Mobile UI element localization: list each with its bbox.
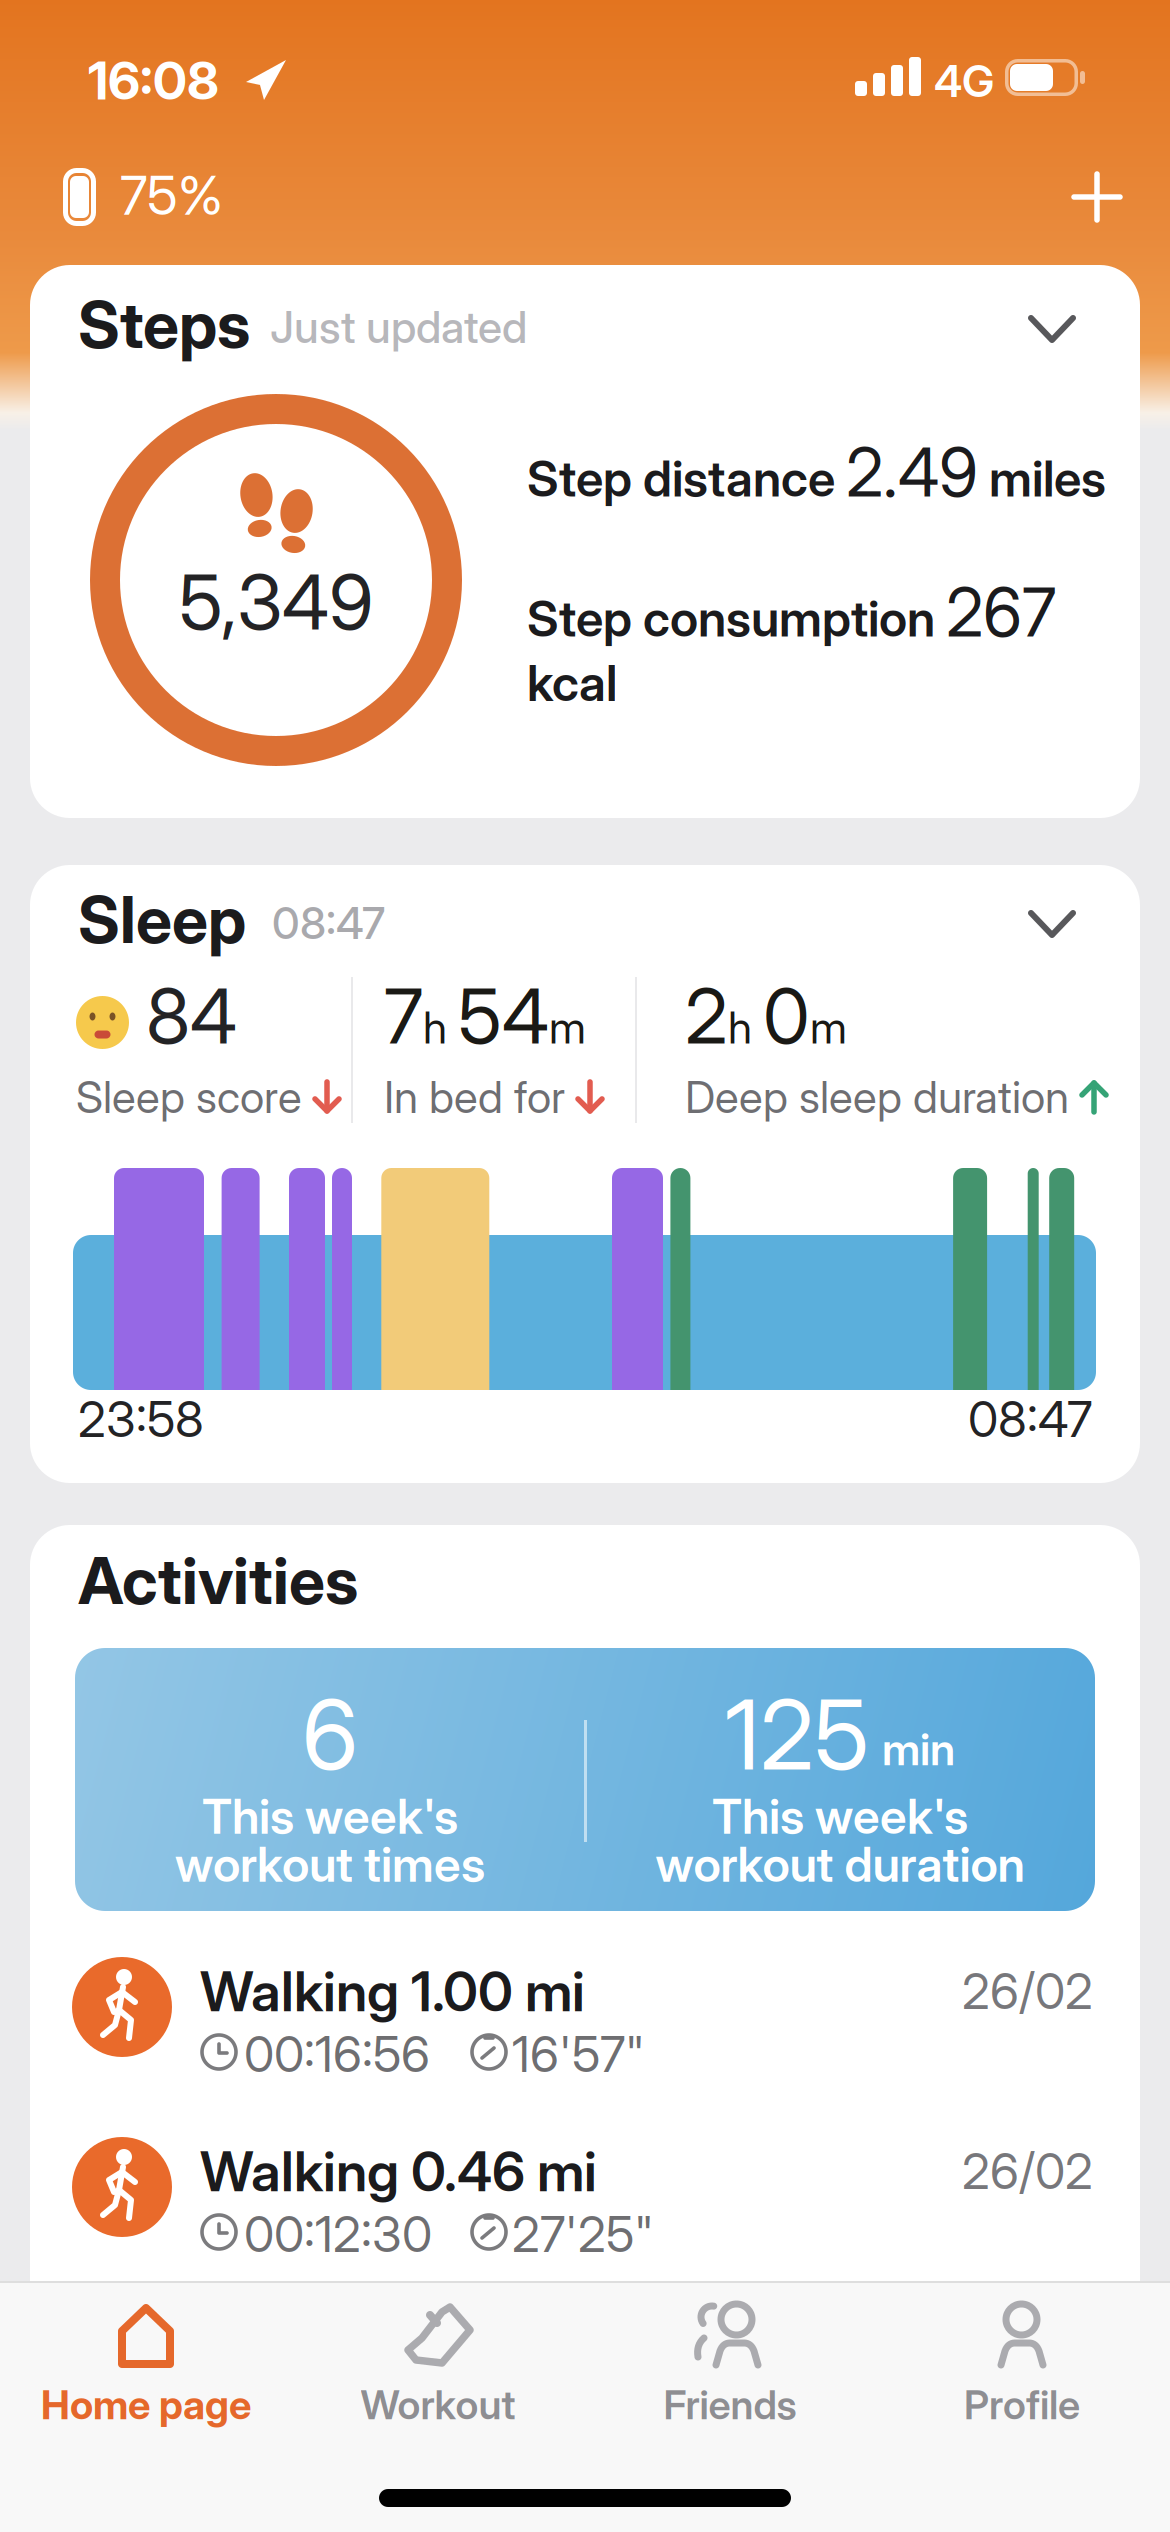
staticText: Friends: [663, 2381, 796, 2428]
staticText: This week's: [202, 1788, 458, 1845]
staticText: 27'25": [512, 2205, 654, 2263]
button[interactable]: Walking 1.00 mi: [72, 1957, 1093, 2085]
staticText: This week's: [712, 1788, 968, 1845]
staticText: Just updated: [270, 301, 527, 353]
staticText: 2h 0m: [685, 971, 847, 1061]
staticText: Walking 1.00 mi: [200, 1959, 585, 2023]
staticText: Workout: [360, 2381, 515, 2428]
staticText: workout times: [175, 1836, 485, 1893]
staticText: 08:47: [272, 897, 385, 949]
staticText: 84: [146, 971, 237, 1061]
button[interactable]: Collapse sleep: [1009, 890, 1095, 958]
staticText: In bed for: [384, 1071, 565, 1123]
staticText: 26/02: [962, 2142, 1093, 2200]
staticText: 23:58: [78, 1390, 204, 1448]
staticText: Deep sleep duration: [685, 1071, 1069, 1123]
staticText: 08:47: [968, 1390, 1092, 1448]
button[interactable]: Home page: [0, 2303, 292, 2428]
staticText: 16'57": [512, 2025, 645, 2083]
staticText: 75%: [120, 164, 223, 227]
staticText: 125: [725, 1678, 869, 1791]
button[interactable]: Workout: [292, 2303, 584, 2428]
staticText: workout duration: [655, 1836, 1024, 1893]
staticText: 00:16:56: [244, 2025, 430, 2083]
button[interactable]: Walking 0.46 mi: [72, 2137, 1093, 2265]
staticText: Step consumption 267: [527, 573, 1056, 652]
staticText: Home page: [41, 2381, 251, 2428]
staticText: Activities: [78, 1543, 358, 1618]
staticText: 5,349: [179, 557, 373, 647]
staticText: 16:08: [88, 50, 219, 111]
button[interactable]: Friends: [584, 2303, 876, 2428]
staticText: Steps: [78, 287, 250, 362]
staticText: 26/02: [962, 1962, 1093, 2020]
staticText: min: [882, 1723, 955, 1775]
staticText: Sleep: [78, 882, 246, 957]
staticText: 6: [302, 1678, 358, 1791]
staticText: kcal: [527, 654, 617, 712]
staticText: Step distance 2.49 miles: [527, 433, 1106, 512]
button[interactable]: Profile: [876, 2303, 1168, 2428]
staticText: 4G: [934, 55, 994, 107]
staticText: 7h 54m: [384, 971, 586, 1061]
staticText: Profile: [964, 2381, 1080, 2428]
button[interactable]: Collapse steps: [1009, 295, 1095, 363]
staticText: 00:12:30: [244, 2205, 432, 2263]
staticText: Walking 0.46 mi: [200, 2139, 597, 2203]
button[interactable]: Add device: [1059, 159, 1135, 235]
staticText: Sleep score: [76, 1071, 302, 1123]
